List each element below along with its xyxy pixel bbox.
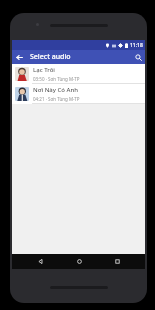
button[interactable]: Back bbox=[12, 50, 26, 64]
staticText: Nơi Này Có Anh bbox=[33, 86, 78, 94]
staticText: Select audio bbox=[30, 52, 71, 62]
staticText: 03:50 · Sơn Tùng M-TP bbox=[33, 76, 80, 82]
button[interactable]: Search bbox=[131, 50, 145, 64]
button[interactable]: Recent apps bbox=[107, 254, 127, 269]
staticText: 11:18 bbox=[130, 42, 143, 49]
button[interactable]: Home bbox=[69, 254, 89, 269]
staticText: 04:21 · Sơn Tùng M-TP bbox=[33, 96, 80, 102]
button[interactable]: Nơi Này Có Anh bbox=[12, 84, 145, 103]
button[interactable]: Lạc Trôi bbox=[12, 64, 145, 83]
button[interactable]: Back bbox=[30, 254, 50, 269]
staticText: Lạc Trôi bbox=[33, 66, 55, 74]
